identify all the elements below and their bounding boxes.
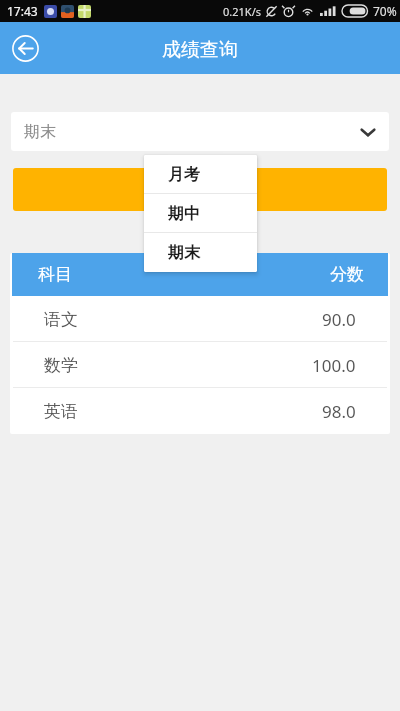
staticText: 70% [373, 3, 397, 19]
button[interactable]: 期末 [11, 112, 389, 151]
staticText: 成绩查询 [162, 38, 238, 62]
button[interactable]: 语文 [10, 296, 390, 342]
staticText: 语文 [44, 309, 78, 330]
button[interactable]: Back [6, 29, 44, 67]
staticText: 期末 [168, 243, 200, 263]
staticText: 科目 [38, 264, 72, 285]
button[interactable]: 期末 [144, 233, 257, 272]
staticText: 17:43 [7, 3, 38, 19]
staticText: 英语 [44, 401, 78, 422]
staticText: 月考 [168, 165, 200, 185]
staticText: 期末 [24, 122, 56, 142]
button[interactable]: 英语 [10, 388, 390, 434]
button[interactable]: 期中 [144, 194, 257, 233]
staticText: 98.0 [322, 400, 356, 423]
staticText: 分数 [330, 264, 364, 285]
staticText: 0.21K/s [223, 4, 261, 19]
staticText: 100.0 [312, 354, 356, 377]
button[interactable]: 数学 [10, 342, 390, 388]
staticText: 期中 [168, 204, 200, 224]
staticText: 数学 [44, 355, 78, 376]
button[interactable]: 月考 [144, 155, 257, 194]
button[interactable] [13, 168, 387, 211]
staticText: 90.0 [322, 308, 356, 331]
